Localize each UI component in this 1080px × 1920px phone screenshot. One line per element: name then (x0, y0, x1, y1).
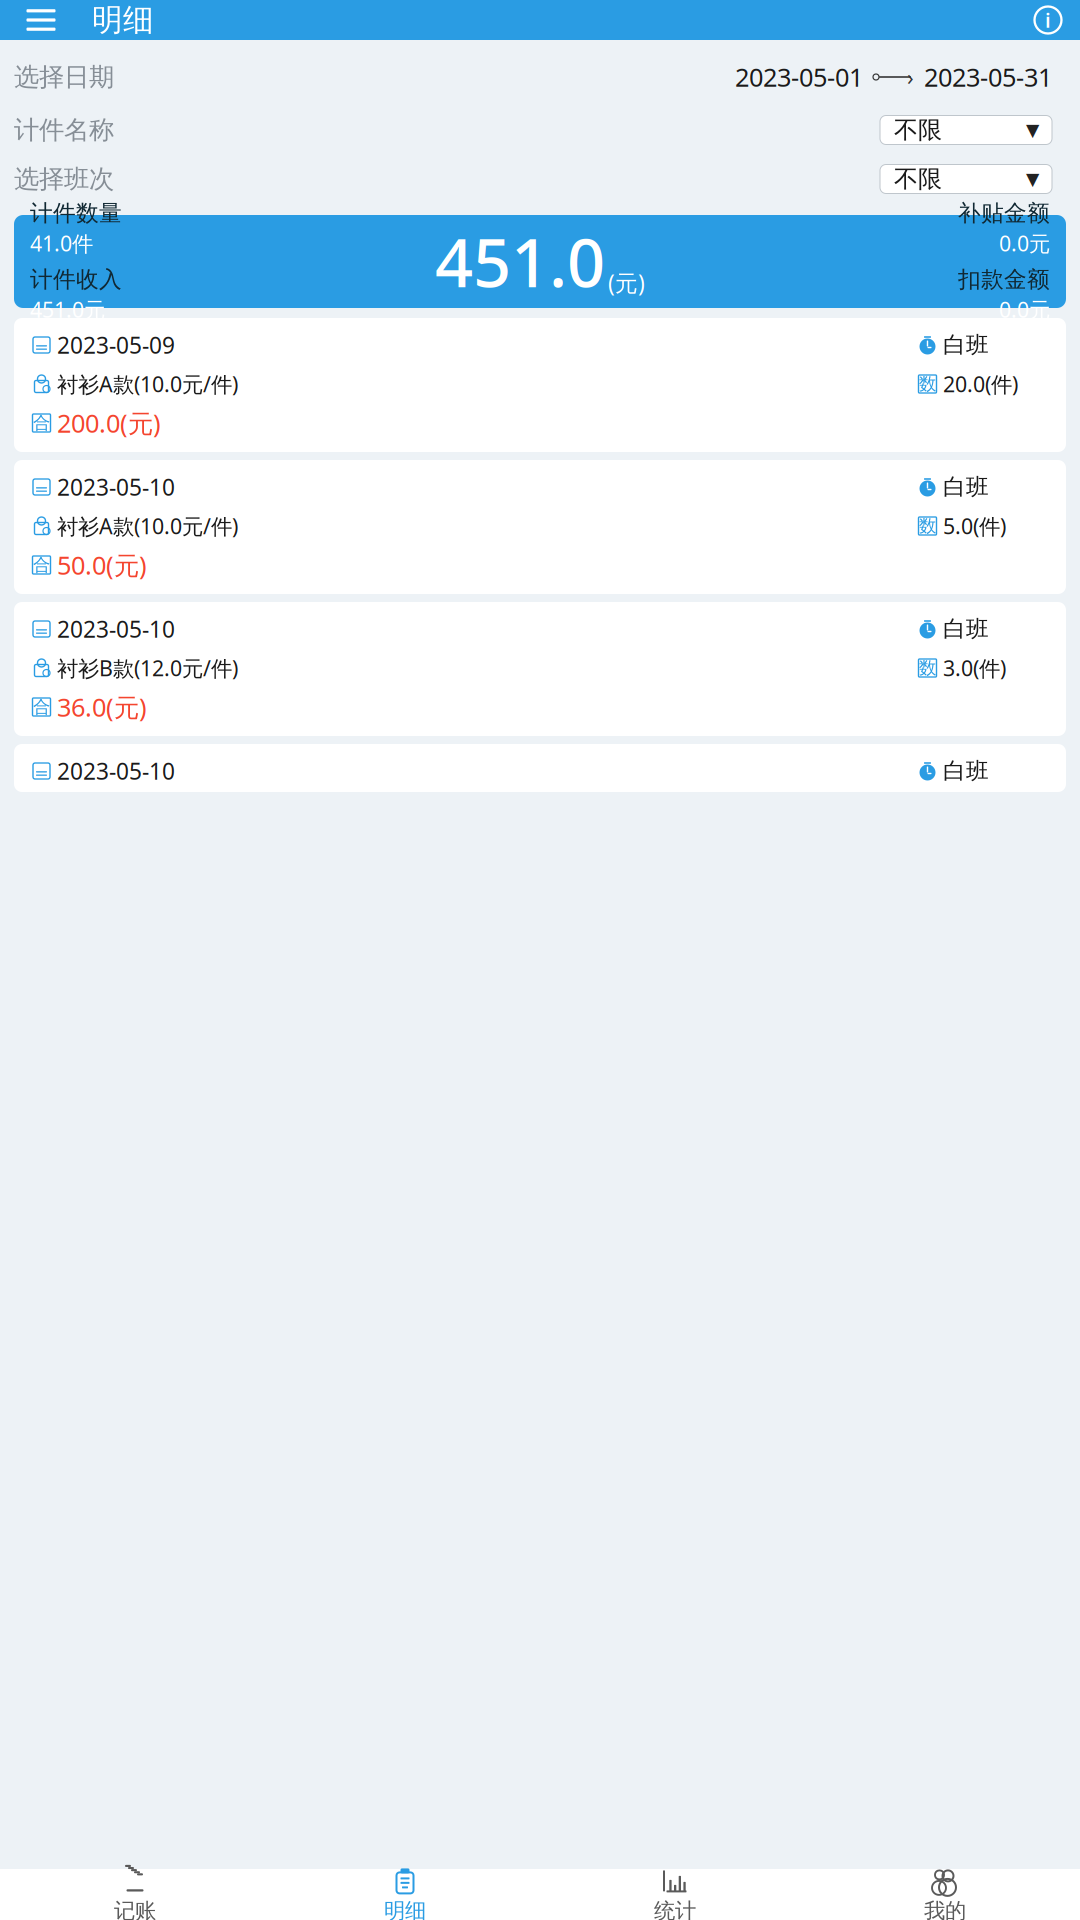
button[interactable]: ✓ (0, 1870, 270, 1920)
staticText: › (907, 63, 914, 91)
button[interactable]: 明细 (270, 1870, 540, 1920)
staticText: 2023-05-01 (735, 60, 863, 94)
staticText: ▼ (1026, 120, 1039, 140)
staticText: 0.0元 (999, 229, 1050, 257)
staticText: 3.0(件) (943, 654, 1006, 682)
button[interactable]: 统计 (540, 1870, 810, 1920)
staticText: 统计 (654, 1898, 696, 1920)
staticText: 白班 (943, 615, 989, 643)
staticText: (元) (608, 268, 645, 298)
staticText: 2023-05-31 (924, 60, 1052, 94)
staticText: 2023-05-10 (57, 614, 175, 644)
button[interactable]: 我的 (810, 1870, 1080, 1920)
button[interactable]: 不限 (880, 164, 1052, 193)
staticText: 不限 (894, 115, 942, 145)
staticText: 我的 (924, 1898, 966, 1920)
staticText: 衬衫A款(10.0元/件) (57, 370, 238, 398)
staticText: 选择日期 (14, 61, 114, 92)
staticText: 41.0件 (30, 229, 93, 257)
button[interactable]: 2023-05-10 (14, 744, 1066, 792)
button[interactable]: 2023-05-09 (14, 318, 1066, 452)
button[interactable]: 2023-05-10 (14, 602, 1066, 736)
staticText: 白班 (943, 331, 989, 359)
staticText: 20.0(件) (943, 370, 1018, 398)
button[interactable]: 不限 (880, 115, 1052, 144)
staticText: 2023-05-10 (57, 756, 175, 786)
staticText: 数 (919, 515, 936, 537)
staticText: 不限 (894, 164, 942, 194)
staticText: 衬衫A款(10.0元/件) (57, 512, 238, 540)
staticText: 200.0(元) (57, 406, 161, 440)
staticText: 记账 (114, 1898, 156, 1920)
staticText: 扣款金额 (958, 265, 1050, 293)
staticText: 数 (919, 373, 936, 395)
staticText: 计件数量 (30, 199, 122, 227)
staticText: 合 (33, 696, 50, 718)
staticText: 白班 (943, 473, 989, 501)
button[interactable]: 2023-05-10 (14, 460, 1066, 594)
staticText: i (1045, 7, 1051, 33)
staticText: 补贴金额 (958, 199, 1050, 227)
staticText: 明细 (384, 1898, 426, 1920)
staticText: 合 (33, 412, 50, 434)
staticText: 计件名称 (14, 114, 114, 145)
button[interactable]: Menu (12, 0, 70, 40)
staticText: 50.0(元) (57, 548, 147, 582)
staticText: 计件收入 (30, 265, 122, 293)
staticText: 明细 (92, 1, 154, 39)
staticText: 451.0 (435, 217, 605, 306)
staticText: 451.0元 (30, 295, 105, 324)
staticText: 选择班次 (14, 163, 114, 194)
staticText: ▼ (1026, 169, 1039, 189)
staticText: 白班 (943, 757, 989, 785)
staticText: 衬衫B款(12.0元/件) (57, 654, 238, 682)
staticText: 5.0(件) (943, 512, 1006, 540)
button[interactable]: Info (1026, 0, 1070, 40)
button[interactable]: 2023-05-31 (924, 60, 1052, 94)
staticText: 2023-05-10 (57, 472, 175, 502)
button[interactable]: 2023-05-01 (735, 60, 863, 94)
staticText: 2023-05-09 (57, 330, 175, 360)
staticText: 36.0(元) (57, 690, 147, 724)
staticText: 合 (33, 554, 50, 576)
staticText: 数 (919, 657, 936, 679)
staticText: 0.0元 (999, 295, 1050, 324)
